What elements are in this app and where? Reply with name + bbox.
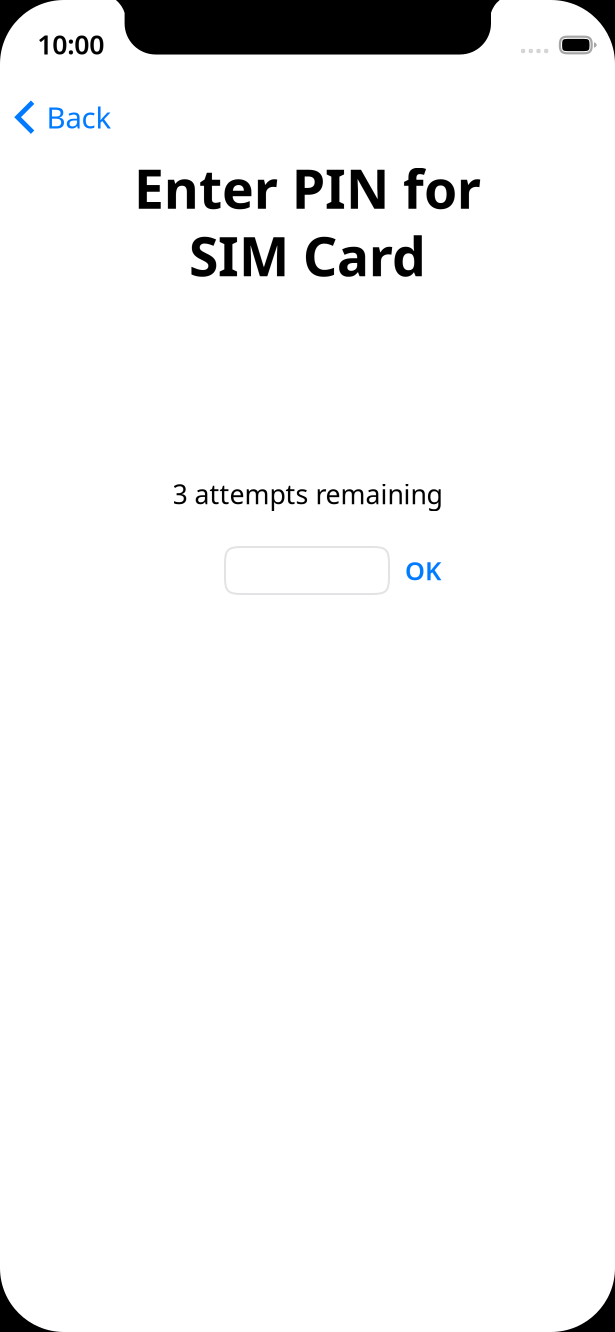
staticText: 3 attempts remaining [172,476,442,512]
staticText: SIM Card [189,220,426,291]
staticText: OK [405,554,441,587]
button[interactable]: PIN [225,547,389,594]
staticText: Back [46,97,111,136]
staticText: Enter PIN for [134,153,481,223]
button[interactable]: OK [394,547,452,594]
button[interactable]: Back [12,91,124,143]
staticText: 10:00 [37,26,104,62]
